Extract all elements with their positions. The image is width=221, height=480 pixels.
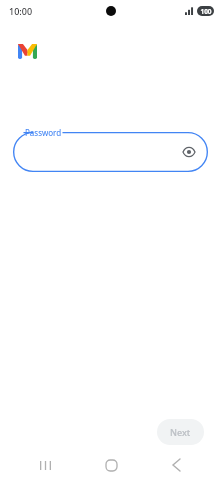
- staticText: 10:00: [9, 5, 33, 17]
- staticText: Password: [25, 127, 62, 138]
- staticText: 100: [200, 7, 212, 16]
- button[interactable]: Home: [91, 450, 131, 480]
- button[interactable]: Recent apps: [25, 450, 65, 480]
- button[interactable]: Back: [156, 450, 196, 480]
- button[interactable]: Next: [157, 419, 204, 445]
- button[interactable]: Password: [13, 132, 208, 172]
- staticText: Next: [170, 426, 191, 438]
- button[interactable]: Show password: [178, 141, 200, 163]
